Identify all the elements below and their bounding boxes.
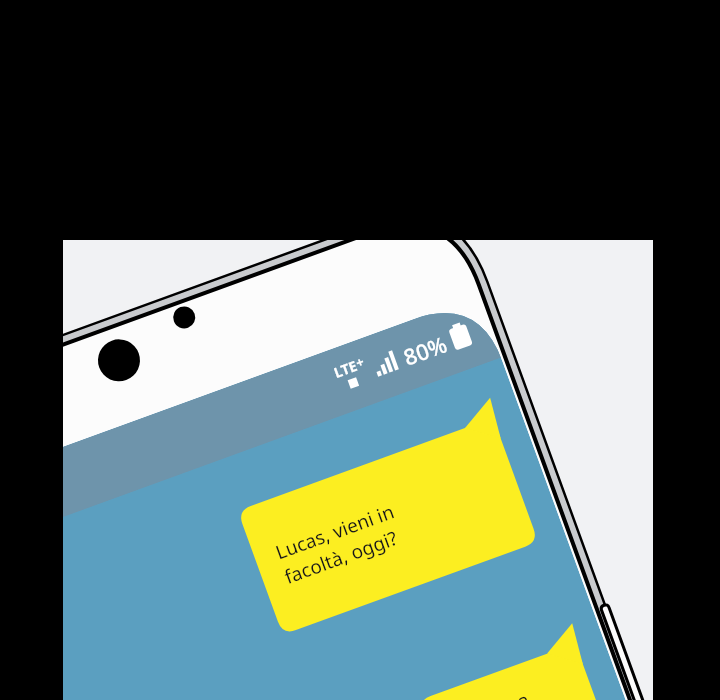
button[interactable]: Chat conversation on phone [0,0,720,700]
